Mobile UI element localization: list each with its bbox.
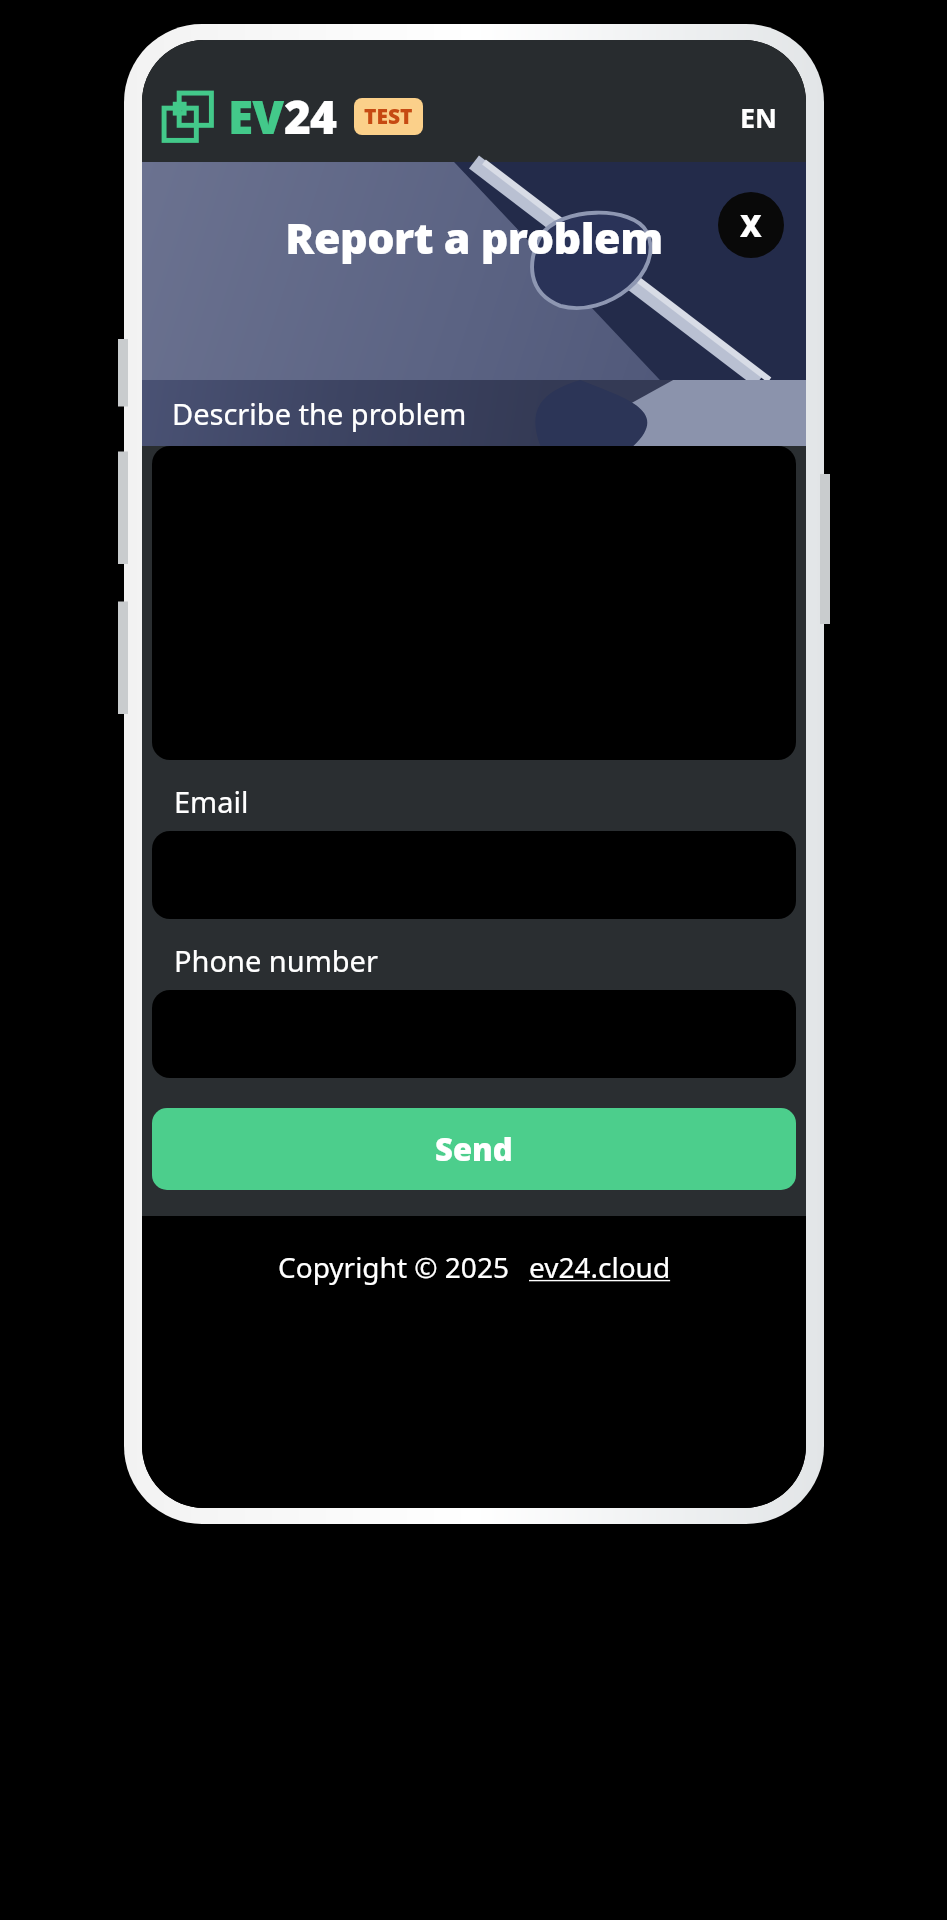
staticText: Describe the problem [172, 394, 467, 433]
staticText: ev24.cloud [529, 1248, 671, 1286]
staticText: EN [740, 99, 778, 136]
button[interactable]: TEST [354, 98, 423, 135]
staticText: Report a problem [285, 208, 663, 267]
button[interactable]: EN [734, 93, 784, 142]
button[interactable]: ev24.cloud [529, 1248, 671, 1286]
button[interactable]: Send [152, 1108, 796, 1190]
button[interactable] [152, 990, 796, 1078]
button[interactable] [152, 831, 796, 919]
staticText: Send [435, 1128, 513, 1170]
staticText: EV [228, 85, 284, 148]
staticText: Copyright © 2025 [278, 1248, 509, 1286]
staticText: TEST [364, 102, 413, 131]
staticText: X [740, 205, 762, 246]
staticText: 24 [284, 85, 336, 148]
button[interactable]: Close [718, 192, 784, 258]
staticText: Phone number [174, 941, 378, 980]
staticText: Email [174, 782, 249, 821]
